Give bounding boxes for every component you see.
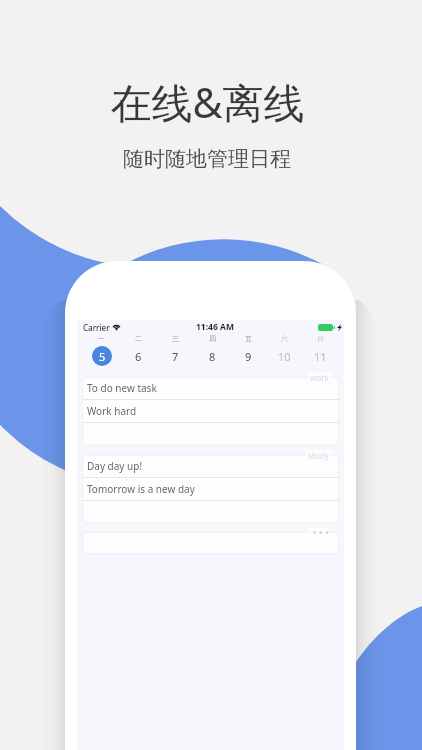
staticText: Carrier [83,322,110,333]
button[interactable]: 9 [230,345,266,367]
staticText: 11 [314,349,327,364]
staticText: 五 [245,334,252,343]
button[interactable]: More [309,528,329,537]
staticText: work [310,372,329,383]
staticText: Day day up! [87,459,143,473]
button[interactable]: study [308,450,329,461]
staticText: 二 [135,334,142,343]
button[interactable]: Tomorrow is a new day [82,478,339,500]
button[interactable] [82,532,339,554]
staticText: 三 [172,334,179,343]
staticText: 六 [281,334,288,343]
staticText: To do new task [87,381,157,395]
staticText: 10 [278,349,291,364]
staticText: 7 [172,349,179,364]
button[interactable]: work [310,372,329,383]
staticText: Work hard [87,404,137,418]
staticText: 11:46 AM [196,321,234,333]
button[interactable]: 7 [157,345,194,367]
staticText: 日 [317,334,324,343]
staticText: study [308,450,329,461]
staticText: 随时随地管理日程 [123,146,291,172]
button[interactable]: 8 [194,345,230,367]
staticText: 5 [99,349,106,364]
staticText: 8 [209,349,216,364]
button[interactable]: 11 [302,345,338,367]
button[interactable]: Day day up! [82,455,339,477]
staticText: 四 [209,334,216,343]
staticText: Tomorrow is a new day [87,482,195,496]
staticText: 6 [135,349,142,364]
staticText: 在线&离线 [110,74,305,130]
button[interactable]: Work hard [82,400,339,422]
button[interactable]: 6 [120,345,157,367]
button[interactable]: To do new task [82,377,339,399]
staticText: 一 [98,334,105,343]
button[interactable]: 10 [266,345,302,367]
staticText: 9 [245,349,252,364]
button[interactable]: 5 [83,345,120,367]
